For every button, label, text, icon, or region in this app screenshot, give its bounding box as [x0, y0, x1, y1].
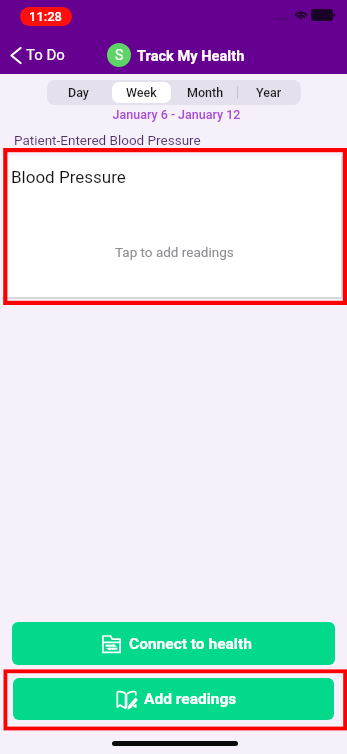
button[interactable]: Connect to health [12, 622, 335, 665]
staticText: To Do [26, 46, 65, 64]
staticText: Patient-Entered Blood Pressure [14, 132, 201, 148]
other: Connect to health [101, 634, 122, 654]
staticText: S [115, 47, 124, 63]
staticText: Week [126, 85, 157, 100]
button[interactable]: Week [112, 82, 171, 103]
button[interactable]: Add readings [13, 678, 334, 720]
button[interactable]: Blood Pressure [2, 156, 343, 299]
staticText: Track My Health [137, 47, 245, 64]
staticText: Blood Pressure [11, 167, 126, 187]
staticText: Year [256, 85, 282, 100]
button[interactable]: Day [49, 82, 108, 103]
staticText: Add readings [144, 690, 237, 708]
staticText: 11:28 [29, 9, 63, 24]
button[interactable]: Year [239, 82, 299, 103]
button[interactable]: Back [6, 42, 69, 68]
button[interactable]: Month [175, 82, 235, 103]
staticText: January 6 - January 12 [3, 107, 347, 122]
staticText: Tap to add readings [115, 244, 234, 260]
staticText: Day [68, 85, 89, 100]
staticText: Month [187, 85, 224, 100]
staticText: Connect to health [129, 635, 252, 653]
other: Add readings [115, 688, 138, 710]
other: Back [10, 48, 22, 63]
